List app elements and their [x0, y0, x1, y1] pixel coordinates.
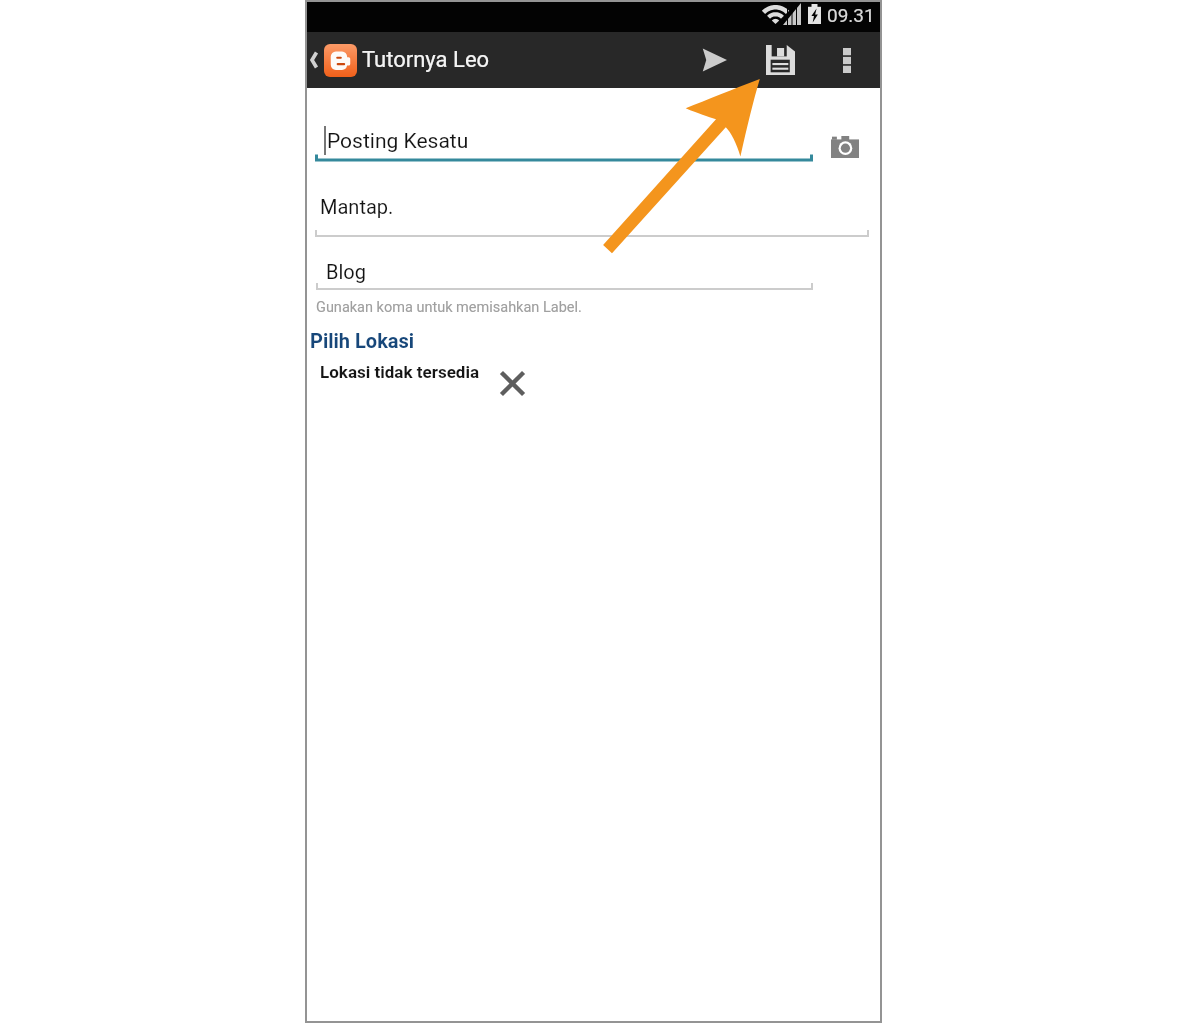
staticText: Pilih Lokasi	[310, 329, 415, 352]
button[interactable]: Clear location	[492, 363, 532, 403]
staticText: Gunakan koma untuk memisahkan Label.	[316, 299, 582, 316]
button[interactable]: Mantap.	[313, 184, 871, 228]
button[interactable]: Posting Kesatu	[313, 118, 815, 162]
button[interactable]: Save draft	[758, 38, 802, 82]
staticText: Tutornya Leo	[362, 47, 490, 73]
button[interactable]: Add photo	[820, 124, 870, 170]
staticText: Posting Kesatu	[327, 129, 469, 154]
staticText: 09.31	[827, 4, 875, 26]
button[interactable]: Pilih Lokasi	[308, 327, 417, 354]
staticText: Mantap.	[320, 195, 394, 218]
button[interactable]: Blog	[313, 249, 815, 293]
button[interactable]: Navigate up	[307, 32, 361, 88]
staticText: Lokasi tidak tersedia	[320, 362, 480, 382]
button[interactable]: Publish	[692, 38, 736, 82]
staticText: Blog	[326, 260, 366, 283]
button[interactable]: More options	[825, 38, 869, 82]
